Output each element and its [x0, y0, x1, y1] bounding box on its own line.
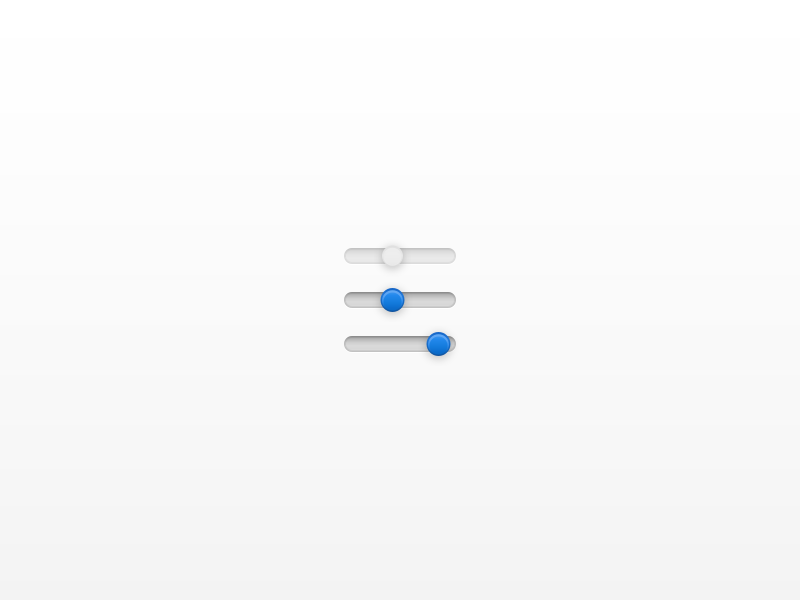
button[interactable]: Slider value	[426, 332, 450, 356]
button[interactable]: Slider value	[380, 288, 404, 312]
button[interactable]: Slider value off	[382, 245, 403, 266]
